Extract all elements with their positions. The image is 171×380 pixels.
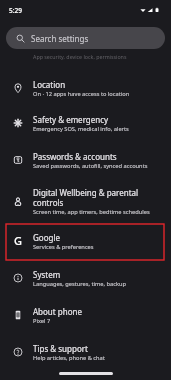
button[interactable]: Passwords & accounts	[0, 142, 171, 179]
staticText: System	[33, 269, 61, 280]
staticText: G	[14, 233, 22, 248]
staticText: Pixel 7	[33, 317, 51, 325]
button[interactable]: G	[0, 223, 171, 260]
button[interactable]: Tips & support	[0, 334, 171, 371]
staticText: Passwords & accounts	[33, 151, 117, 162]
staticText: On · 12 apps have access to location	[33, 90, 130, 98]
staticText: Saved passwords, autofill, synced accoun…	[33, 162, 148, 170]
button[interactable]: App security, device lock, permissions	[0, 42, 171, 62]
staticText: Help articles, phone & chat	[33, 354, 105, 362]
button[interactable]: Safety & emergency	[0, 105, 171, 142]
staticText: Services & preferences	[33, 243, 94, 251]
button[interactable]: System	[0, 260, 171, 297]
staticText: Emergency SOS, medical info, alerts	[33, 125, 129, 133]
button[interactable]: Digital Wellbeing & parental controls	[0, 179, 171, 225]
staticText: Google	[33, 232, 60, 243]
staticText: Languages, gestures, time, backup	[33, 280, 127, 288]
staticText: 5:29	[9, 6, 22, 15]
button[interactable]: Search settings	[6, 27, 165, 49]
staticText: Digital Wellbeing & parental controls	[33, 187, 155, 208]
staticText: About phone	[33, 306, 82, 317]
staticText: Search settings	[31, 33, 89, 44]
staticText: Screen time, app timers, bedtime schedul…	[33, 208, 150, 216]
button[interactable]: About phone	[0, 297, 171, 334]
button[interactable]: Location	[0, 70, 171, 107]
staticText: Location	[33, 79, 66, 90]
staticText: Safety & emergency	[33, 114, 109, 125]
staticText: Tips & support	[33, 343, 88, 354]
staticText: App security, device lock, permissions	[33, 53, 127, 60]
